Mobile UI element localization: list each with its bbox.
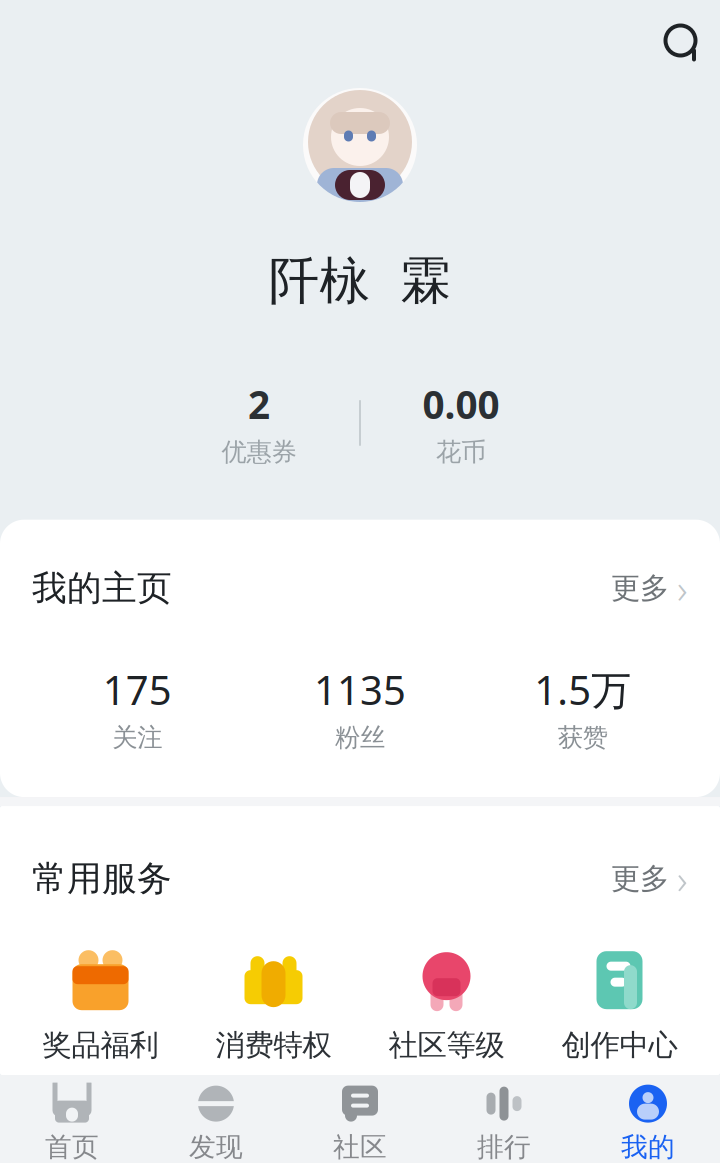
button[interactable] (533, 1093, 706, 1163)
staticText: 消费特权 (215, 1027, 331, 1063)
staticText: 175 (103, 663, 172, 716)
staticText: 粉丝 (335, 722, 385, 753)
button[interactable] (14, 1093, 187, 1163)
button[interactable]: 奖品福利 (14, 949, 187, 1063)
button[interactable]: 搜索 (662, 22, 720, 66)
staticText: 1135 (314, 663, 406, 716)
staticText: 优惠券 (221, 437, 296, 468)
staticText: 首页 (45, 1131, 99, 1163)
button[interactable]: 1135 (249, 663, 471, 753)
staticText: 常用服务 (32, 857, 172, 900)
staticText: 2 (248, 378, 270, 429)
button[interactable]: 社区 (288, 1075, 432, 1163)
staticText: 阡栐 霖 (268, 250, 451, 312)
button[interactable]: 头像 (303, 88, 417, 202)
button[interactable] (360, 1093, 533, 1163)
staticText: 花币 (436, 437, 486, 468)
staticText: › (677, 562, 688, 615)
staticText: 获赞 (558, 722, 608, 753)
staticText: 更多 (611, 570, 669, 606)
staticText: 0.00 (422, 378, 499, 429)
button[interactable]: 消费特权 (187, 949, 360, 1063)
button[interactable]: 2 (159, 374, 359, 472)
button[interactable] (187, 1093, 360, 1163)
button[interactable]: 社区等级 (360, 949, 533, 1063)
staticText: 发现 (189, 1131, 243, 1163)
staticText: 更多 (611, 861, 669, 897)
button[interactable]: 更多 (599, 846, 688, 911)
staticText: 创作中心 (561, 1027, 677, 1063)
button[interactable]: 创作中心 (533, 949, 706, 1063)
staticText: 社区等级 (388, 1027, 504, 1063)
button[interactable]: 175 (26, 663, 249, 753)
button[interactable]: 我的 (576, 1075, 720, 1163)
staticText: 我的 (621, 1131, 675, 1163)
staticText: 奖品福利 (42, 1027, 158, 1063)
button[interactable]: 0.00 (361, 374, 561, 472)
button[interactable]: 更多 (599, 556, 688, 621)
button[interactable]: 发现 (144, 1075, 288, 1163)
staticText: 我的主页 (32, 567, 172, 610)
staticText: › (677, 852, 688, 905)
staticText: 1.5万 (534, 663, 631, 716)
staticText: 社区 (333, 1131, 387, 1163)
staticText: 关注 (112, 722, 162, 753)
button[interactable]: 排行 (432, 1075, 576, 1163)
staticText: 排行 (477, 1131, 531, 1163)
button[interactable]: 1.5万 (471, 663, 694, 753)
button[interactable]: 首页 (0, 1075, 144, 1163)
